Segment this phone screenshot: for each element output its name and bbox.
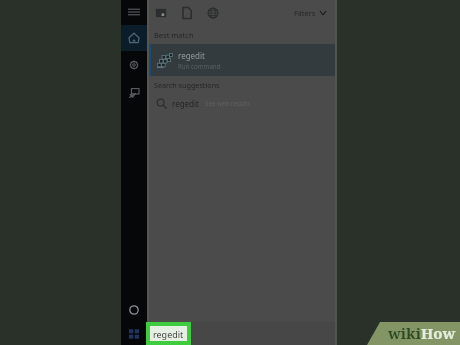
staticText: How [421, 323, 456, 343]
button[interactable]: Menu [121, 0, 147, 25]
button[interactable]: Start [121, 323, 147, 345]
button[interactable]: Feedback [121, 79, 147, 107]
button[interactable]: regedit [150, 326, 187, 341]
button[interactable]: Filters [289, 4, 331, 22]
button[interactable]: Cortana [121, 297, 147, 323]
staticText: Best match [154, 30, 194, 40]
button[interactable]: Web [202, 2, 224, 24]
staticText: regedit [172, 98, 199, 109]
button[interactable]: Apps [150, 2, 172, 24]
button[interactable]: Settings [121, 51, 147, 79]
button[interactable]: regedit [149, 44, 335, 76]
staticText: Filters [294, 8, 316, 18]
button[interactable]: Home [121, 25, 147, 51]
button[interactable]: regedit [149, 94, 335, 112]
staticText: Run command [178, 62, 221, 70]
staticText: regedit [153, 328, 184, 340]
button[interactable]: Documents [176, 2, 198, 24]
staticText: See web results [205, 99, 251, 107]
staticText: Search suggestions [154, 80, 220, 90]
staticText: regedit [178, 50, 205, 61]
staticText: wiki [388, 323, 421, 343]
